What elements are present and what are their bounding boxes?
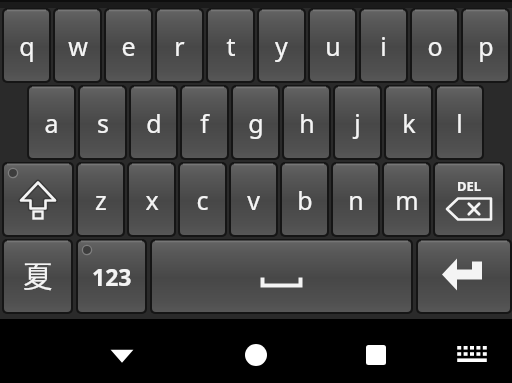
button[interactable]: t bbox=[206, 8, 255, 83]
button[interactable]: Language bbox=[2, 239, 73, 314]
staticText: n bbox=[348, 183, 364, 217]
staticText: h bbox=[299, 106, 315, 140]
staticText: DEL bbox=[457, 177, 482, 195]
button[interactable]: z bbox=[76, 162, 125, 237]
staticText: s bbox=[97, 106, 109, 140]
staticText: a bbox=[44, 106, 59, 140]
staticText: 123 bbox=[92, 261, 132, 292]
staticText: g bbox=[248, 106, 264, 140]
button[interactable]: x bbox=[127, 162, 176, 237]
button[interactable]: w bbox=[53, 8, 102, 83]
button[interactable]: p bbox=[461, 8, 510, 83]
button[interactable]: u bbox=[308, 8, 357, 83]
button[interactable]: i bbox=[359, 8, 408, 83]
staticText: m bbox=[395, 183, 419, 217]
button[interactable]: b bbox=[280, 162, 329, 237]
staticText: v bbox=[247, 183, 260, 217]
staticText: p bbox=[478, 29, 494, 63]
button[interactable]: l bbox=[435, 85, 484, 160]
button[interactable]: m bbox=[382, 162, 431, 237]
staticText: 夏 bbox=[23, 258, 53, 296]
button[interactable]: s bbox=[78, 85, 127, 160]
button[interactable]: n bbox=[331, 162, 380, 237]
button[interactable]: c bbox=[178, 162, 227, 237]
button[interactable]: Hide keyboard bbox=[96, 329, 148, 381]
button[interactable]: Home bbox=[230, 329, 282, 381]
button[interactable]: o bbox=[410, 8, 459, 83]
button[interactable]: q bbox=[2, 8, 51, 83]
staticText: x bbox=[145, 183, 159, 217]
button[interactable]: Delete bbox=[433, 162, 505, 237]
staticText: l bbox=[456, 106, 463, 140]
button[interactable]: d bbox=[129, 85, 178, 160]
button[interactable]: Shift bbox=[2, 162, 74, 237]
button[interactable]: j bbox=[333, 85, 382, 160]
button[interactable]: r bbox=[155, 8, 204, 83]
button[interactable]: h bbox=[282, 85, 331, 160]
button[interactable]: v bbox=[229, 162, 278, 237]
button[interactable]: f bbox=[180, 85, 229, 160]
staticText: t bbox=[226, 29, 236, 63]
staticText: r bbox=[174, 29, 185, 63]
button[interactable]: Numbers and symbols bbox=[76, 239, 147, 314]
staticText: e bbox=[121, 29, 136, 63]
staticText: y bbox=[275, 29, 288, 63]
staticText: k bbox=[402, 106, 416, 140]
staticText: i bbox=[380, 29, 387, 63]
button[interactable]: a bbox=[27, 85, 76, 160]
staticText: q bbox=[19, 29, 35, 63]
button[interactable]: Switch keyboard bbox=[450, 333, 494, 377]
staticText: b bbox=[297, 183, 313, 217]
button[interactable]: Recent apps bbox=[350, 329, 402, 381]
staticText: d bbox=[146, 106, 162, 140]
staticText: c bbox=[196, 183, 209, 217]
button[interactable]: y bbox=[257, 8, 306, 83]
button[interactable]: e bbox=[104, 8, 153, 83]
staticText: f bbox=[200, 106, 209, 140]
staticText: w bbox=[68, 29, 88, 63]
staticText: z bbox=[95, 183, 107, 217]
staticText: j bbox=[354, 106, 361, 140]
button[interactable]: Space bbox=[150, 239, 413, 314]
button[interactable]: g bbox=[231, 85, 280, 160]
staticText: u bbox=[325, 29, 341, 63]
button[interactable]: k bbox=[384, 85, 433, 160]
button[interactable]: Enter bbox=[416, 239, 512, 314]
staticText: o bbox=[427, 29, 443, 63]
